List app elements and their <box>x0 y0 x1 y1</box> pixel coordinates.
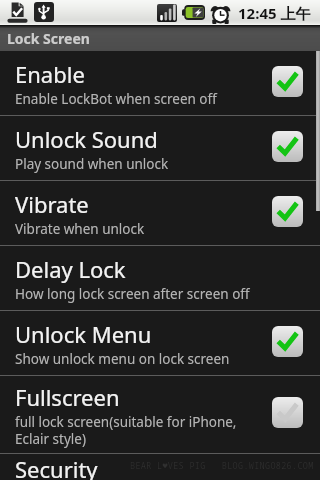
staticText: 12:45 上午 <box>238 3 311 23</box>
button[interactable]: Toggle <box>272 196 303 227</box>
button[interactable]: Vibrate <box>0 181 320 245</box>
button[interactable]: Toggle <box>272 131 303 162</box>
button[interactable]: Enable <box>0 51 320 115</box>
staticText: Vibrate when unlock <box>15 220 145 238</box>
staticText: Enable <box>15 59 85 89</box>
button[interactable]: Toggle <box>272 397 303 428</box>
staticText: Play sound when unlock <box>15 155 169 173</box>
staticText: Vibrate <box>15 189 89 219</box>
button[interactable]: Delay Lock <box>0 246 320 310</box>
staticText: full lock screen(suitable for iPhone, Ec… <box>15 413 237 448</box>
staticText: Unlock Menu <box>15 319 152 349</box>
staticText: Fullscreen <box>15 382 120 412</box>
button[interactable]: Unlock Sound <box>0 116 320 180</box>
button[interactable]: Toggle <box>272 326 303 357</box>
staticText: Security <box>15 454 98 480</box>
button[interactable]: Unlock Menu <box>0 311 320 375</box>
staticText: How long lock screen after screen off <box>15 285 250 303</box>
staticText: Enable LockBot when screen off <box>15 90 217 108</box>
button[interactable]: Fullscreen <box>0 376 320 453</box>
staticText: BEAR L♥VES PIG BLOG.WINGO826.COM <box>130 460 314 472</box>
staticText: Delay Lock <box>15 254 126 284</box>
staticText: Unlock Sound <box>15 124 158 154</box>
staticText: Lock Screen <box>7 29 90 48</box>
staticText: Show unlock menu on lock screen <box>15 350 230 368</box>
button[interactable]: Security <box>0 454 320 480</box>
button[interactable]: Toggle <box>272 66 303 97</box>
